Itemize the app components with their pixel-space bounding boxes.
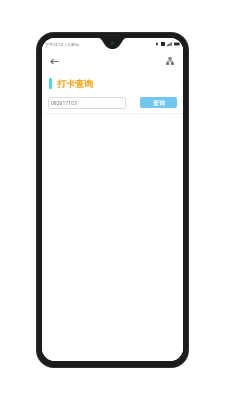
staticText: 092617103: [51, 100, 77, 107]
button[interactable]: 092617103: [48, 97, 126, 109]
staticText: 下午12:12 | 0.4K/s: [45, 42, 80, 47]
staticText: 打卡查询: [57, 78, 93, 89]
button[interactable]: Back: [46, 53, 62, 69]
button[interactable]: 查询: [140, 97, 177, 108]
button[interactable]: Share: [162, 53, 178, 69]
staticText: 查询: [153, 99, 165, 107]
